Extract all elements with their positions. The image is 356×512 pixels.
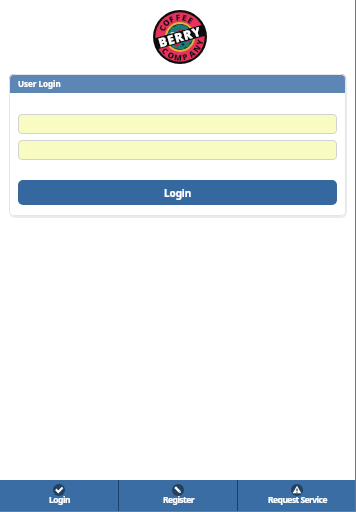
other: Request Service: [291, 484, 303, 496]
staticText: User Login: [18, 78, 61, 89]
button[interactable]: Register: [119, 480, 237, 512]
button[interactable]: Login: [0, 480, 118, 512]
other: Register: [172, 484, 184, 496]
other: Coffee Berry Company logo: [153, 10, 207, 64]
button[interactable]: Login: [18, 180, 337, 205]
button[interactable]: Request Service: [238, 480, 356, 512]
other: Login: [53, 484, 65, 496]
button[interactable]: [18, 140, 337, 160]
staticText: Request Service: [268, 494, 327, 506]
staticText: Register: [163, 494, 194, 506]
button[interactable]: [18, 114, 337, 134]
staticText: Login: [164, 186, 192, 200]
staticText: Login: [49, 494, 70, 506]
